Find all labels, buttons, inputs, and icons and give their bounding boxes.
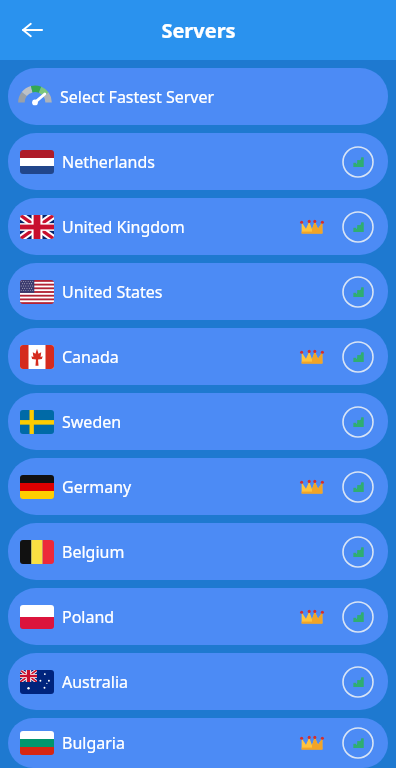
staticText: Netherlands <box>62 151 155 173</box>
other: Signal strength <box>342 406 374 438</box>
button[interactable]: Belgium <box>8 523 388 580</box>
staticText: United States <box>62 281 163 303</box>
button[interactable]: Australia <box>8 653 388 710</box>
other: Signal strength <box>342 276 374 308</box>
other: Signal strength <box>342 536 374 568</box>
other: Signal strength <box>342 211 374 243</box>
staticText: Canada <box>62 346 119 368</box>
button[interactable]: Netherlands <box>8 133 388 190</box>
staticText: United Kingdom <box>62 216 185 238</box>
button[interactable]: Back <box>10 8 54 52</box>
staticText: Australia <box>62 671 129 693</box>
other: Signal strength <box>342 727 374 759</box>
staticText: Poland <box>62 606 115 628</box>
staticText: Germany <box>62 476 132 498</box>
button[interactable]: United States <box>8 263 388 320</box>
button[interactable]: Sweden <box>8 393 388 450</box>
staticText: Select Fastest Server <box>60 86 215 108</box>
staticText: Sweden <box>62 411 122 433</box>
button[interactable]: Select Fastest Server <box>8 68 388 125</box>
staticText: Bulgaria <box>62 732 125 754</box>
staticText: Servers <box>161 17 236 44</box>
button[interactable]: Poland <box>8 588 388 645</box>
other: Signal strength <box>342 146 374 178</box>
button[interactable]: Germany <box>8 458 388 515</box>
staticText: Belgium <box>62 541 125 563</box>
button[interactable]: Canada <box>8 328 388 385</box>
other: Signal strength <box>342 341 374 373</box>
button[interactable]: United Kingdom <box>8 198 388 255</box>
button[interactable]: Bulgaria <box>8 718 388 768</box>
other: Signal strength <box>342 666 374 698</box>
other: Signal strength <box>342 601 374 633</box>
other: Signal strength <box>342 471 374 503</box>
